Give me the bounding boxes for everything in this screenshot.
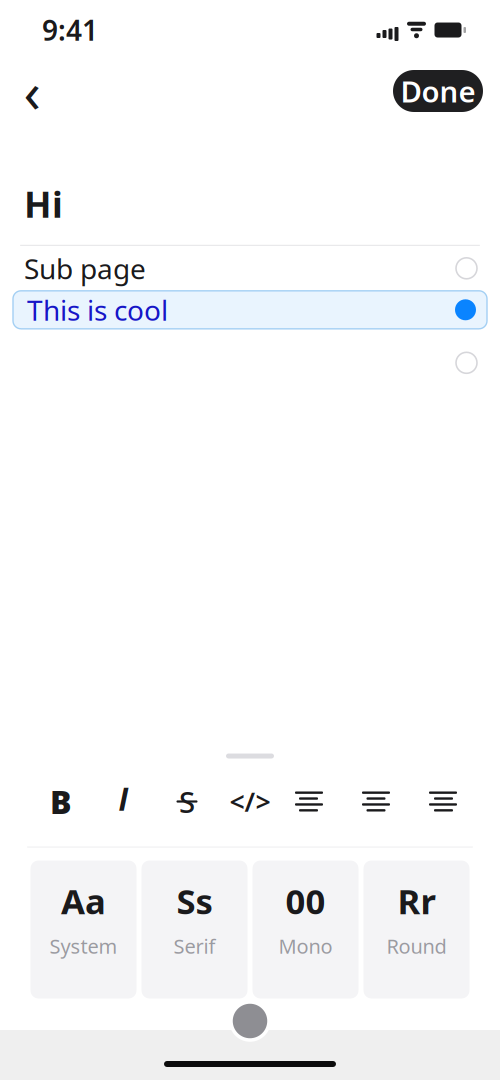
staticText: Rr — [397, 878, 435, 924]
staticText: Hi — [24, 180, 63, 228]
staticText: Serif — [173, 933, 215, 959]
staticText: Sub page — [24, 250, 146, 287]
button[interactable]: 00 — [252, 860, 358, 998]
staticText: System — [49, 933, 117, 959]
button[interactable]: Align center — [344, 781, 407, 821]
staticText: Done — [400, 71, 475, 110]
button[interactable]: This is cool — [13, 291, 487, 329]
staticText: Ss — [176, 878, 212, 924]
button[interactable]: Aa — [30, 860, 136, 998]
staticText: </> — [229, 784, 270, 819]
staticText: 9:41 — [42, 11, 98, 49]
button[interactable]: Back — [5, 66, 59, 116]
button[interactable]: Ss — [141, 860, 247, 998]
staticText: This is cool — [27, 291, 168, 328]
staticText: S — [179, 782, 195, 821]
button[interactable]: Align left — [281, 781, 344, 821]
staticText: Aa — [61, 878, 106, 924]
button[interactable]: Done — [393, 70, 483, 112]
staticText: 00 — [285, 878, 325, 924]
button[interactable]: Rr — [363, 860, 469, 998]
button[interactable]: Italic — [92, 781, 155, 821]
staticText: B — [50, 780, 72, 823]
button[interactable]: Code — [218, 781, 281, 821]
staticText: ‹ — [23, 54, 40, 128]
button[interactable]: Bold — [29, 781, 92, 821]
button[interactable]: Strikethrough — [155, 781, 218, 821]
button[interactable]: Align right — [407, 781, 470, 821]
staticText: Round — [386, 933, 446, 959]
button[interactable]: Sub page — [0, 246, 500, 291]
staticText: 𝑰 — [119, 786, 129, 816]
staticText: Mono — [278, 933, 332, 959]
